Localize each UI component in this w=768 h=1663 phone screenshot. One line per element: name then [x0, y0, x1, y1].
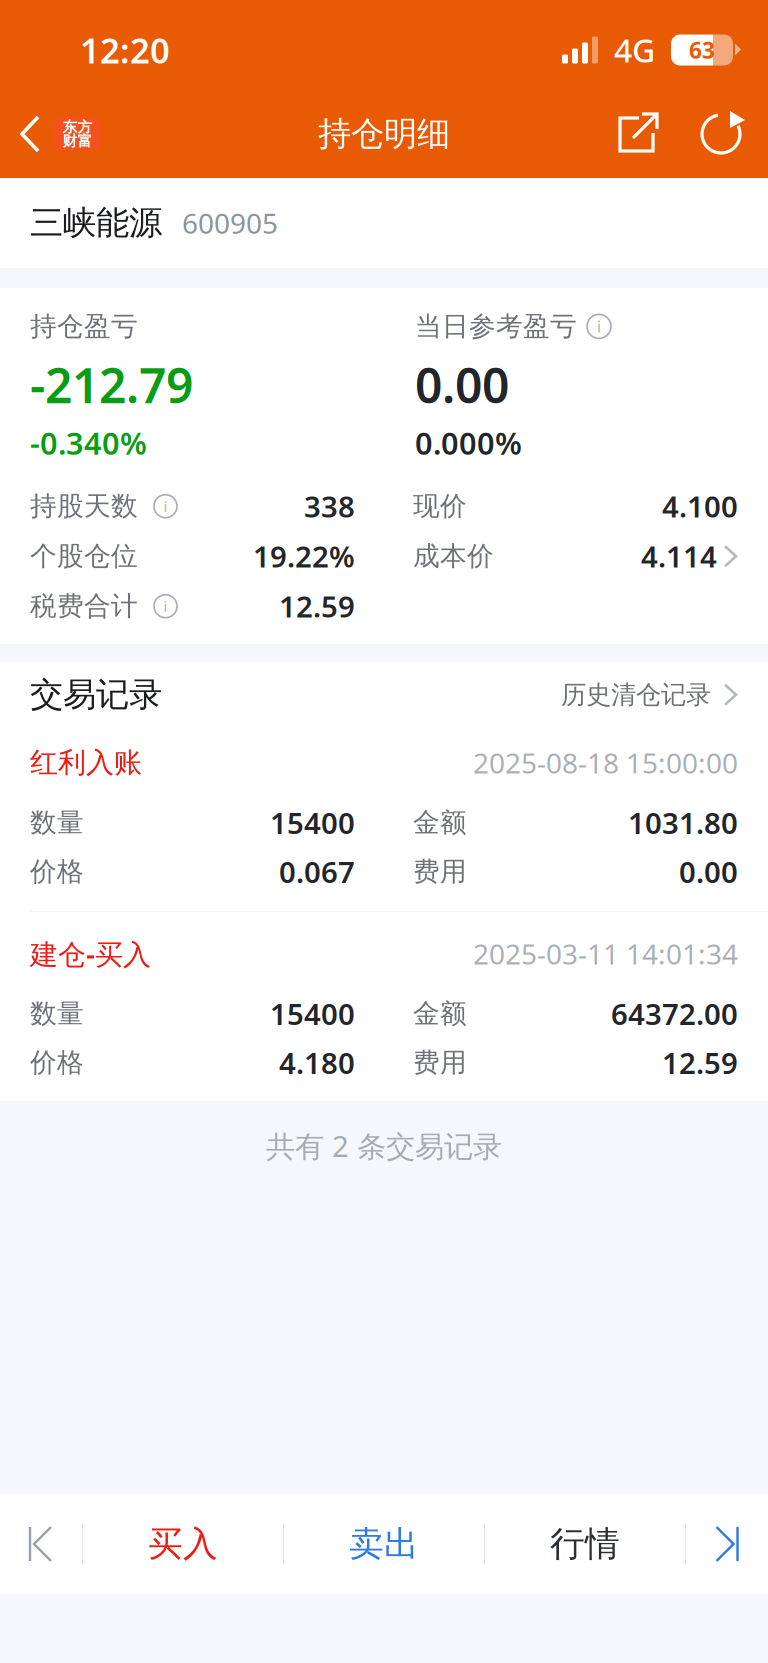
staticText: 持仓明细: [318, 113, 450, 154]
staticText: 15400: [270, 803, 355, 842]
staticText: 4.114: [641, 537, 717, 576]
staticText: 历史清仓记录: [561, 679, 711, 710]
staticText: 19.22%: [253, 537, 355, 576]
staticText: 买入: [148, 1523, 218, 1565]
staticText: 价格: [30, 1046, 84, 1079]
staticText: 12:20: [80, 27, 170, 73]
staticText: 0.00: [679, 852, 738, 891]
staticText: 价格: [30, 855, 84, 888]
staticText: 4.180: [279, 1043, 355, 1082]
button[interactable]: Share: [596, 90, 682, 178]
staticText: 当日参考盈亏: [415, 310, 577, 343]
staticText: 63: [689, 35, 715, 65]
staticText: i: [163, 496, 167, 516]
button[interactable]: Back: [0, 90, 113, 178]
button[interactable]: Next stock: [686, 1494, 768, 1594]
staticText: 600905: [182, 204, 278, 242]
button[interactable]: Refresh: [682, 90, 762, 178]
staticText: 持仓盈亏: [30, 310, 138, 343]
staticText: -212.79: [30, 353, 193, 416]
staticText: 持股天数: [30, 490, 138, 523]
staticText: 财富: [62, 132, 92, 150]
button[interactable]: 成本价: [413, 531, 738, 581]
staticText: i: [597, 316, 601, 337]
staticText: 红利入账: [30, 745, 142, 780]
staticText: 现价: [413, 490, 467, 523]
staticText: 费用: [413, 855, 467, 888]
button[interactable]: 行情: [485, 1494, 685, 1594]
button[interactable]: 买入: [83, 1494, 283, 1594]
staticText: 行情: [550, 1523, 620, 1565]
staticText: 12.59: [662, 1043, 738, 1082]
staticText: 0.067: [279, 852, 355, 891]
staticText: 金额: [413, 806, 467, 839]
staticText: 成本价: [413, 540, 494, 573]
staticText: 0.000%: [415, 422, 522, 463]
staticText: 0.00: [415, 353, 509, 416]
button[interactable]: 历史清仓记录: [561, 679, 738, 710]
button[interactable]: Previous stock: [0, 1494, 82, 1594]
button[interactable]: 卖出: [284, 1494, 484, 1594]
staticText: 数量: [30, 997, 84, 1030]
staticText: 15400: [270, 994, 355, 1033]
staticText: 1031.80: [628, 803, 738, 842]
staticText: 交易记录: [30, 674, 162, 715]
staticText: 4.100: [662, 487, 738, 526]
staticText: 数量: [30, 806, 84, 839]
staticText: 个股仓位: [30, 540, 138, 573]
staticText: 三峡能源: [30, 202, 162, 243]
staticText: 12.59: [279, 587, 355, 626]
staticText: 费用: [413, 1046, 467, 1079]
staticText: 建仓-买入: [30, 935, 151, 972]
staticText: 税费合计: [30, 590, 138, 623]
staticText: 金额: [413, 997, 467, 1030]
staticText: 4G: [614, 29, 655, 71]
staticText: 2025-03-11 14:01:34: [473, 935, 738, 972]
staticText: 338: [304, 487, 355, 526]
staticText: 2025-08-18 15:00:00: [473, 744, 738, 781]
staticText: 共有 2 条交易记录: [266, 1126, 502, 1165]
staticText: 东方: [62, 118, 92, 136]
staticText: i: [163, 596, 167, 616]
staticText: 64372.00: [611, 994, 738, 1033]
staticText: -0.340%: [30, 422, 147, 463]
staticText: 卖出: [349, 1523, 419, 1565]
